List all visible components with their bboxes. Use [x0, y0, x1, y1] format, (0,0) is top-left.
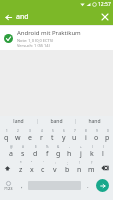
staticText: n [77, 165, 82, 175]
staticText: Android mit Praktikum [17, 29, 81, 37]
staticText: 8 [85, 129, 87, 133]
staticText: 0 [107, 129, 109, 133]
button[interactable]: ( [86, 144, 97, 160]
staticText: ?123 [4, 186, 13, 191]
staticText: & [57, 145, 60, 149]
staticText: h [67, 149, 72, 159]
staticText: b [65, 165, 70, 175]
button[interactable]: * [15, 160, 26, 176]
button[interactable]: Back [0, 9, 16, 25]
button[interactable]: % [41, 144, 53, 160]
button[interactable]: ; [61, 160, 73, 176]
staticText: ! [79, 161, 80, 165]
staticText: ' [43, 161, 44, 165]
staticText: 7 [74, 129, 76, 133]
staticText: 2 [17, 129, 19, 133]
staticText: v [53, 165, 57, 175]
staticText: 5 [52, 129, 54, 133]
staticText: ; [67, 161, 68, 165]
staticText: # [22, 145, 24, 149]
button[interactable]: ) [97, 144, 108, 160]
button[interactable]: & [53, 144, 64, 160]
staticText: ? [91, 161, 93, 165]
button[interactable]: Shift [0, 160, 15, 176]
staticText: e [28, 133, 32, 143]
staticText: 12:57 [98, 1, 111, 8]
staticText: q [4, 133, 9, 143]
staticText: a [9, 149, 13, 159]
button[interactable]: 1 [0, 128, 12, 144]
staticText: 1 [6, 129, 8, 133]
button[interactable]: land [0, 116, 37, 127]
button[interactable]: 9 [91, 128, 102, 144]
staticText: ( [92, 145, 93, 149]
staticText: @ [10, 145, 13, 149]
button[interactable]: 8 [80, 128, 91, 144]
staticText: c [41, 165, 45, 175]
button[interactable]: @ [5, 144, 17, 160]
staticText: . [87, 182, 89, 190]
button[interactable]: Backspace [97, 160, 113, 176]
staticText: - [69, 145, 70, 149]
staticText: 4 [41, 129, 43, 133]
staticText: 6 [63, 129, 65, 133]
button[interactable]: hand [76, 116, 113, 127]
button[interactable]: ' [37, 160, 49, 176]
button[interactable]: ? [85, 160, 97, 176]
staticText: p [105, 133, 110, 143]
button[interactable]: ?123 [0, 176, 17, 195]
button[interactable]: ! [73, 160, 85, 176]
button[interactable]: 2 [12, 128, 24, 144]
staticText: f [46, 149, 49, 159]
staticText: " [31, 161, 33, 165]
button[interactable]: Search [96, 179, 109, 192]
staticText: y [62, 133, 66, 143]
button[interactable]: # [17, 144, 29, 160]
button[interactable]: 0 [102, 128, 113, 144]
staticText: d [33, 149, 38, 159]
button[interactable]: 5 [47, 128, 58, 144]
staticText: r [40, 133, 43, 143]
button[interactable]: - [64, 144, 75, 160]
button[interactable]: 6 [58, 128, 69, 144]
staticText: m [88, 165, 95, 175]
staticText: , [21, 182, 23, 190]
button[interactable]: + [75, 144, 86, 160]
staticText: ) [103, 145, 104, 149]
staticText: o [94, 133, 99, 143]
button[interactable]: , [17, 176, 26, 195]
staticText: : [55, 161, 56, 165]
staticText: g [56, 149, 61, 159]
staticText: land [13, 118, 24, 125]
staticText: hand [88, 118, 101, 125]
staticText: and [16, 12, 29, 22]
button[interactable]: Clear search [97, 9, 113, 25]
button[interactable]: 4 [36, 128, 47, 144]
staticText: Versuch: 1 (SS 14) [17, 43, 50, 48]
staticText: x [30, 165, 34, 175]
staticText: j [80, 149, 82, 159]
button[interactable]: Android mit Praktikum [0, 26, 113, 50]
staticText: z [19, 165, 23, 175]
staticText: $ [35, 145, 37, 149]
staticText: 9 [96, 129, 98, 133]
button[interactable]: 3 [24, 128, 36, 144]
staticText: * [20, 161, 22, 165]
button[interactable]: : [49, 160, 61, 176]
button[interactable]: 7 [69, 128, 80, 144]
staticText: Note: 1,0 (0,0 ECTS) [17, 38, 54, 43]
button[interactable]: band [38, 116, 75, 127]
staticText: k [90, 149, 94, 159]
staticText: w [15, 133, 21, 143]
button[interactable]: $ [29, 144, 41, 160]
staticText: u [72, 133, 77, 143]
staticText: 3 [29, 129, 31, 133]
staticText: + [80, 145, 82, 149]
staticText: l [102, 149, 104, 159]
staticText: i [85, 133, 87, 143]
button[interactable]: . [83, 176, 92, 195]
staticText: % [46, 145, 49, 149]
staticText: band [50, 118, 63, 125]
button[interactable]: " [26, 160, 37, 176]
